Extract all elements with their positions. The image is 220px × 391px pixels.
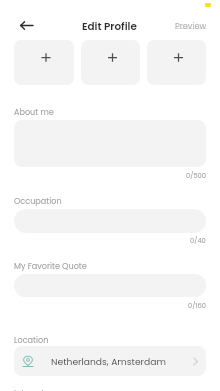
staticText: 0/500 <box>186 171 206 180</box>
button[interactable]: Add photo <box>147 40 206 85</box>
staticText: Interests <box>14 387 49 391</box>
button[interactable]: Add photo <box>14 40 74 85</box>
staticText: Occupation <box>14 195 62 206</box>
button[interactable]: Back <box>16 16 36 34</box>
staticText: About me <box>14 106 54 117</box>
staticText: Edit Profile <box>82 19 137 34</box>
button[interactable]: Preview <box>172 20 210 31</box>
staticText: Preview <box>175 20 207 31</box>
staticText: 0/160 <box>188 301 206 310</box>
staticText: Location <box>14 334 49 345</box>
staticText: 0/40 <box>190 236 206 245</box>
button[interactable]: Netherlands, Amsterdam <box>14 346 206 376</box>
button[interactable]: Add photo <box>81 40 140 85</box>
staticText: Netherlands, Amsterdam <box>51 355 166 368</box>
staticText: My Favorite Quote <box>14 260 87 271</box>
